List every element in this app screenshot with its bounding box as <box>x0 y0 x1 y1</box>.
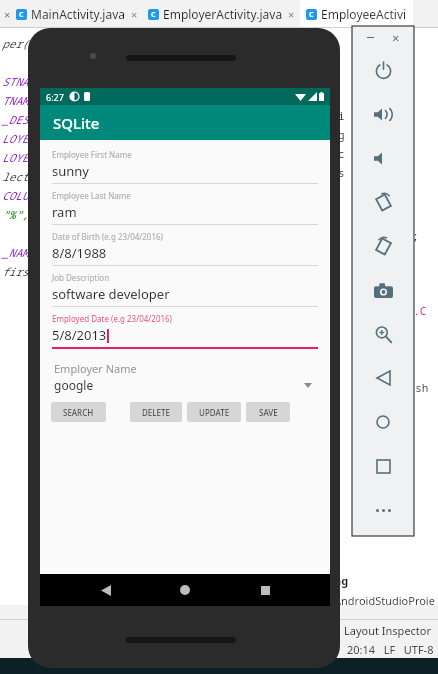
staticText: "%", <box>2 207 29 222</box>
staticText: Employee Last Name <box>52 190 131 201</box>
button[interactable]: Employer Name <box>54 361 316 393</box>
button[interactable]: Employed Date (e.g 23/04/2016) <box>52 313 318 355</box>
staticText: ; <box>412 228 419 243</box>
button[interactable]: Minimize <box>362 29 378 45</box>
staticText: lect <box>2 169 29 184</box>
staticText: AndroidStudioProje <box>334 593 435 608</box>
button[interactable]: Employee First Name <box>52 149 318 190</box>
staticText: × <box>131 7 138 22</box>
staticText: Employer Name <box>54 361 137 376</box>
staticText: SEARCH <box>63 407 94 418</box>
staticText: sunny <box>52 162 89 180</box>
staticText: COLU <box>2 188 29 203</box>
staticText: × <box>288 7 295 22</box>
staticText: Job Description <box>52 272 110 283</box>
staticText: C <box>151 10 156 20</box>
staticText: s <box>338 165 345 180</box>
button[interactable]: Rotate right <box>352 224 414 268</box>
staticText: 5/8/2013 <box>52 326 107 344</box>
staticText: Date of Birth (e.g 23/04/2016) <box>52 231 163 242</box>
staticText: g <box>338 127 345 142</box>
staticText: 8/8/1988 <box>52 244 107 262</box>
staticText: ram <box>52 203 77 221</box>
staticText: _NAM <box>2 245 29 260</box>
staticText: _DES <box>2 112 29 127</box>
button[interactable]: UPDATE <box>187 402 241 422</box>
button[interactable]: Overview <box>352 444 414 488</box>
button[interactable]: SAVE <box>246 402 290 422</box>
staticText: Employed Date (e.g 23/04/2016) <box>52 313 173 324</box>
staticText: software developer <box>52 285 170 303</box>
button[interactable]: Volume down <box>352 136 414 180</box>
button[interactable]: SQLite <box>40 105 330 140</box>
staticText: EmployeeActivi <box>321 6 407 22</box>
button[interactable]: Back <box>352 356 414 400</box>
staticText: UPDATE <box>199 407 230 418</box>
staticText: 6:27 <box>46 91 64 103</box>
staticText: Layout Inspector <box>344 623 432 638</box>
button[interactable]: Volume up <box>352 92 414 136</box>
button[interactable]: Back <box>92 576 120 604</box>
staticText: EmployerActivity.java <box>163 6 283 22</box>
staticText: 20:14 LF UTF-8 <box>347 642 434 657</box>
button[interactable]: Power <box>352 48 414 92</box>
staticText: × <box>392 29 400 45</box>
staticText: SQLite <box>53 113 100 133</box>
button[interactable]: Home <box>352 400 414 444</box>
button[interactable]: Zoom <box>352 312 414 356</box>
staticText: STNA <box>2 74 29 89</box>
staticText: LOYE <box>2 150 29 165</box>
staticText: Employee First Name <box>52 149 132 160</box>
staticText: i <box>338 108 345 123</box>
button[interactable]: More <box>352 488 414 532</box>
button[interactable]: Home <box>171 576 199 604</box>
staticText: LOYE <box>2 131 29 146</box>
button[interactable]: Date of Birth (e.g 23/04/2016) <box>52 231 318 272</box>
staticText: DELETE <box>142 407 170 418</box>
staticText: C <box>309 10 314 20</box>
button[interactable]: Close <box>388 29 404 45</box>
staticText: × <box>4 7 11 22</box>
staticText: ee.C <box>400 303 427 318</box>
staticText: SAVE <box>259 407 278 418</box>
button[interactable]: Take screenshot <box>352 268 414 312</box>
button[interactable]: Employee Last Name <box>52 190 318 231</box>
button[interactable]: Rotate left <box>352 180 414 224</box>
staticText: firs <box>2 264 29 279</box>
other: Open employer dropdown <box>304 383 312 388</box>
staticText: per( <box>2 36 29 51</box>
button[interactable]: Job Description <box>52 272 318 313</box>
staticText: ng <box>334 573 349 588</box>
button[interactable]: SEARCH <box>51 402 106 422</box>
staticText: C <box>19 10 24 20</box>
button[interactable]: DELETE <box>130 402 182 422</box>
staticText: google <box>54 377 94 393</box>
button[interactable]: Recent apps <box>251 576 279 604</box>
staticText: MainActivity.java <box>31 6 126 22</box>
staticText: ).sh <box>402 380 429 395</box>
staticText: TNAM <box>2 93 29 108</box>
staticText: c <box>338 146 345 161</box>
